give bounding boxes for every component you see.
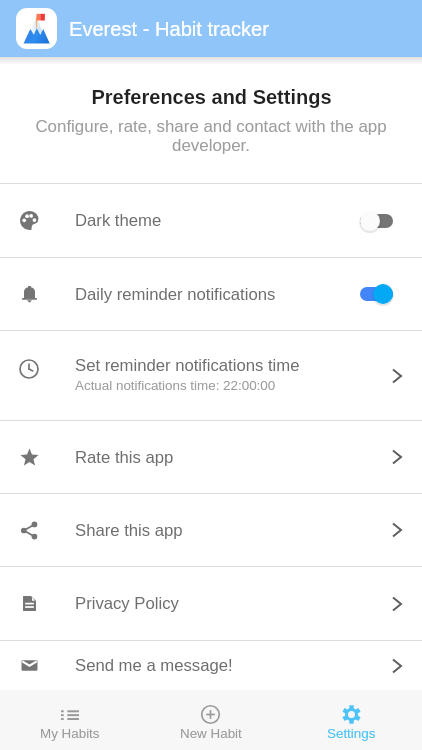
button[interactable]: Dark theme — [0, 184, 422, 257]
staticText: Privacy Policy — [75, 594, 179, 613]
other: Open — [362, 331, 422, 420]
button[interactable]: Privacy Policy — [0, 567, 422, 640]
button[interactable]: My Habits — [0, 690, 140, 750]
staticText: Actual notifications time: 22:00:00 — [75, 378, 276, 393]
other: Open — [362, 641, 422, 690]
staticText: My Habits — [40, 726, 100, 741]
staticText: Configure, rate, share and contact with … — [28, 117, 394, 155]
button[interactable]: New Habit — [140, 690, 281, 750]
other: Toggle — [362, 258, 422, 330]
staticText: Dark theme — [75, 211, 162, 230]
staticText: Set reminder notifications time — [75, 356, 300, 375]
staticText: Daily reminder notifications — [75, 285, 276, 304]
staticText: Rate this app — [75, 448, 174, 467]
button[interactable]: Rate this app — [0, 421, 422, 493]
button[interactable]: Settings — [281, 690, 422, 750]
other: Open — [362, 494, 422, 566]
staticText: Everest - Habit tracker — [69, 18, 269, 40]
staticText: New Habit — [180, 726, 242, 741]
button[interactable]: Daily reminder notifications — [0, 258, 422, 330]
button[interactable]: Send me a message! — [0, 641, 422, 690]
button[interactable]: Share this app — [0, 494, 422, 566]
staticText: Send me a message! — [75, 656, 233, 675]
other: Open — [362, 567, 422, 640]
staticText: Share this app — [75, 521, 183, 540]
other: Open — [362, 421, 422, 493]
staticText: Settings — [327, 726, 376, 741]
staticText: Preferences and Settings — [91, 86, 332, 108]
button[interactable]: Set reminder notifications time — [0, 331, 422, 420]
other: Toggle — [362, 184, 422, 257]
